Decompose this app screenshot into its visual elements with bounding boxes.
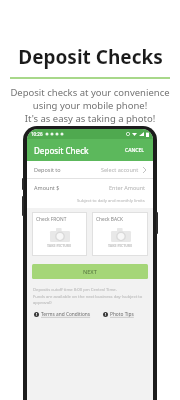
staticText: Deposits cutoff time 8:00 pm Central Tim… — [33, 287, 147, 305]
button[interactable]: CANCEL — [123, 145, 146, 156]
staticText: Photo Tips — [110, 311, 134, 318]
staticText: Subject to daily and monthly limits — [77, 198, 145, 204]
button[interactable]: Photo Tips — [103, 311, 134, 318]
staticText: Amount $ — [34, 184, 60, 191]
button[interactable]: Amount $ — [27, 179, 153, 196]
staticText: NEXT — [83, 268, 97, 275]
staticText: Deposit Checks — [18, 44, 163, 70]
staticText: 10:26 — [31, 131, 43, 137]
staticText: Enter Amount — [109, 184, 146, 191]
staticText: Check BACK — [96, 216, 123, 223]
staticText: Terms and Conditions — [41, 311, 91, 318]
button[interactable]: Deposit to — [27, 161, 153, 178]
button[interactable]: Terms and Conditions — [34, 311, 91, 318]
staticText: Select account — [101, 166, 139, 173]
button[interactable]: NEXT — [32, 264, 148, 279]
staticText: TAKE PICTURE — [108, 243, 133, 248]
button[interactable]: Take picture of Check FRONT — [32, 212, 87, 256]
staticText: Check FRONT — [36, 216, 67, 223]
staticText: CANCEL — [125, 147, 144, 154]
staticText: Deposit checks at your convenience using… — [6, 86, 174, 125]
staticText: Deposit to — [34, 166, 61, 173]
staticText: Deposit Check — [34, 145, 89, 156]
button[interactable]: Take picture of Check BACK — [92, 212, 148, 256]
staticText: TAKE PICTURE — [47, 243, 72, 248]
